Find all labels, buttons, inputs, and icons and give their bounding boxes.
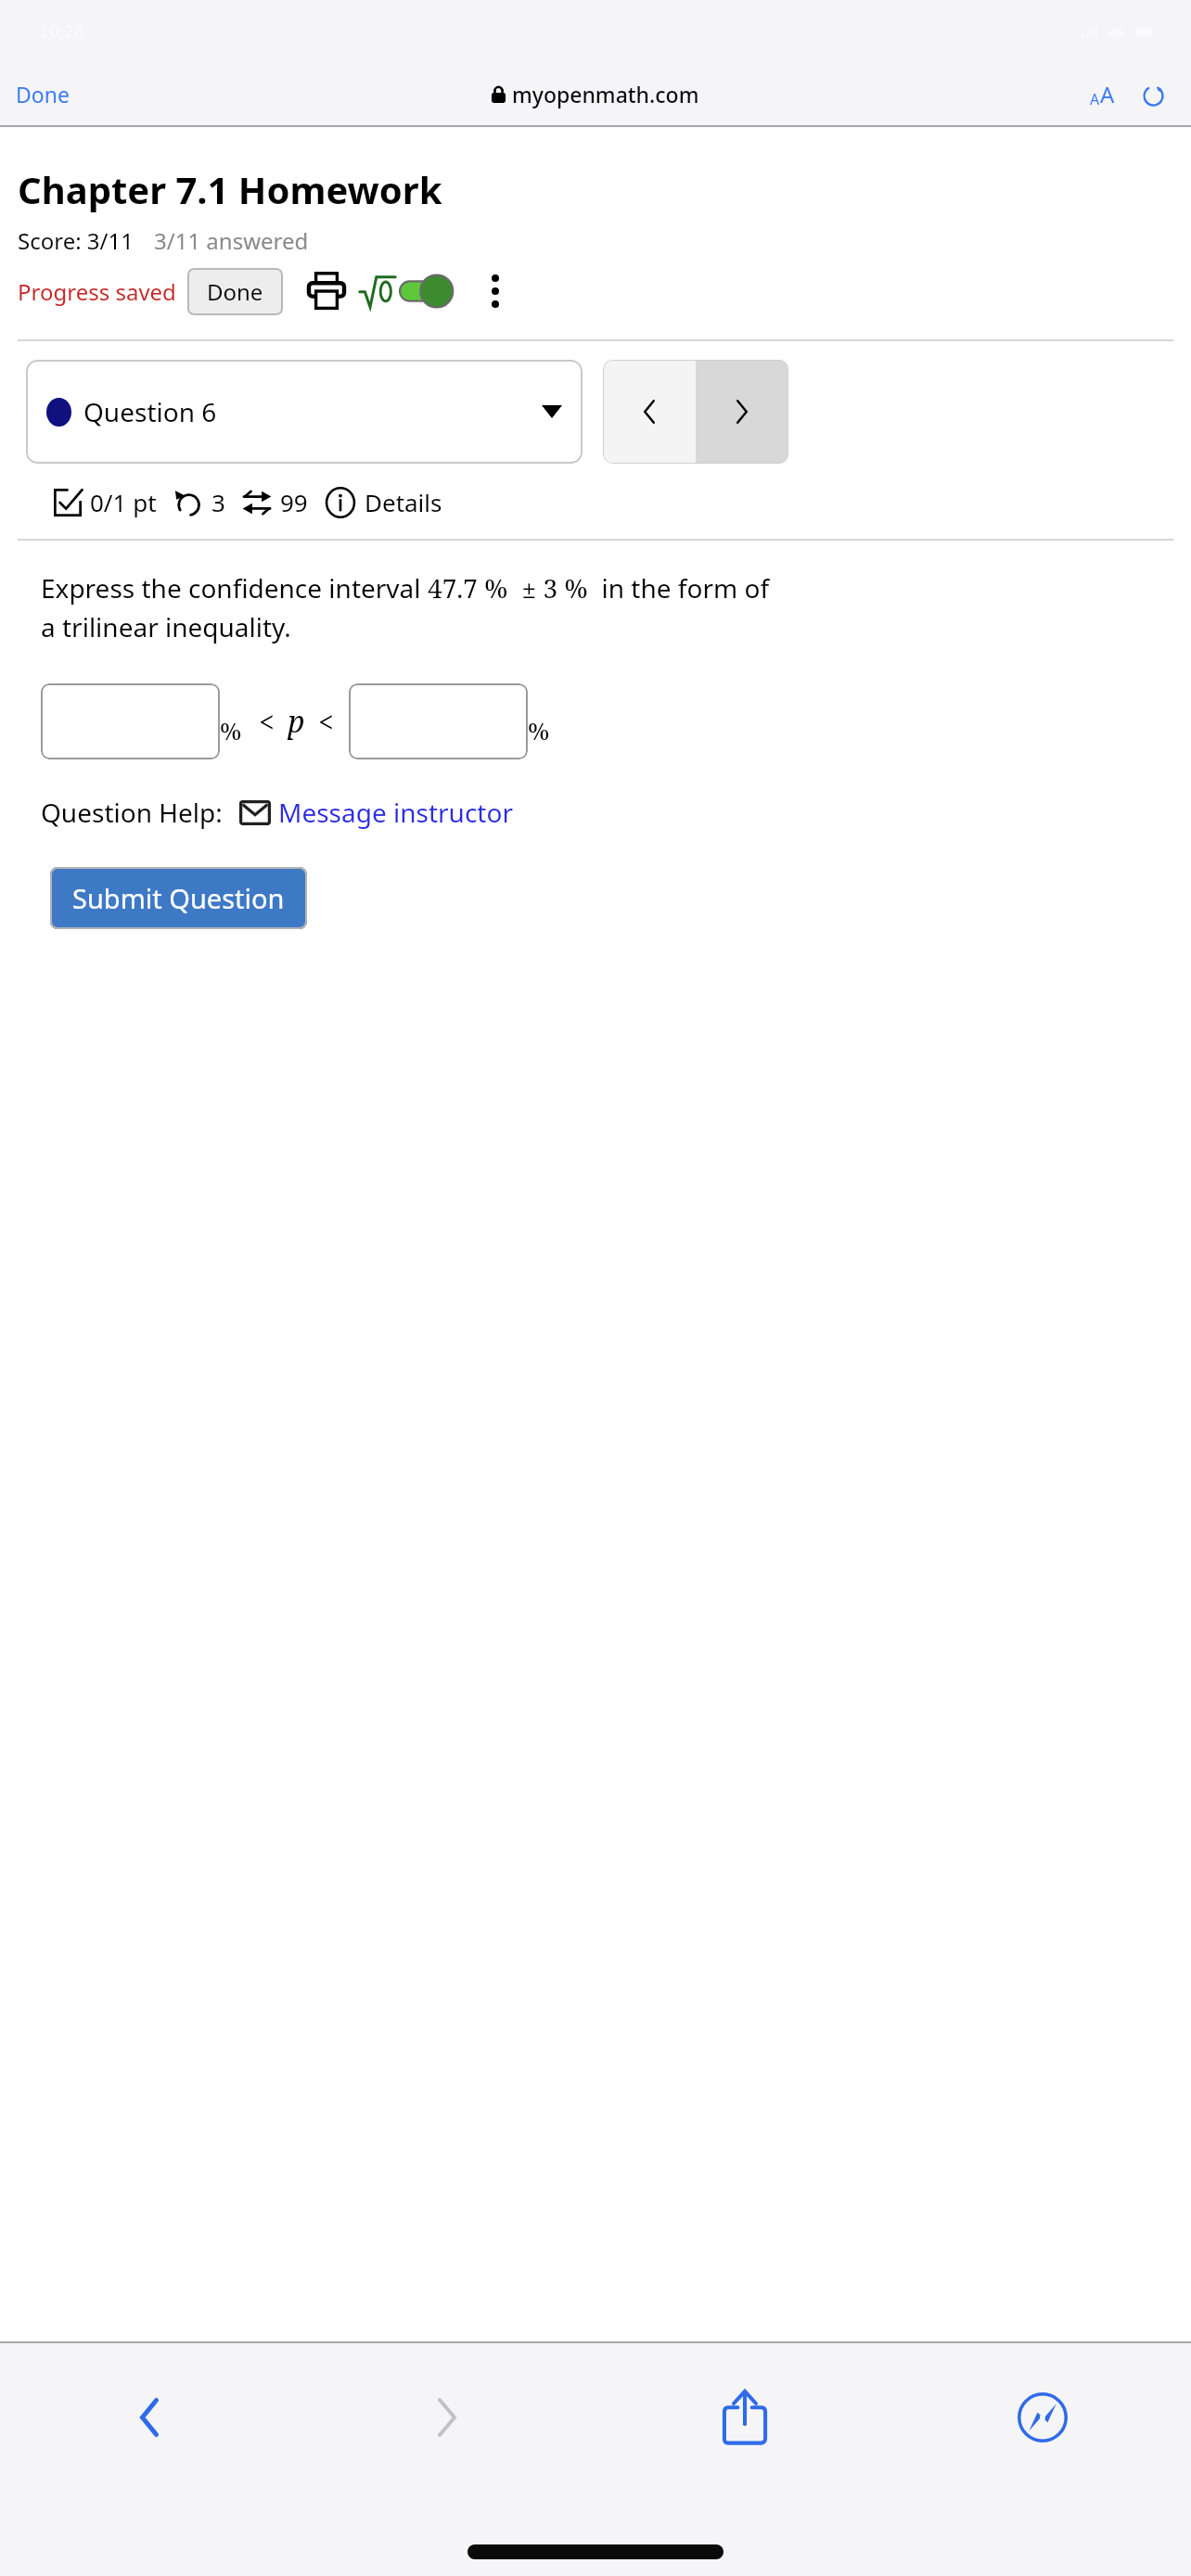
button[interactable]: Forward: [298, 2343, 595, 2492]
staticText: Progress saved: [18, 276, 176, 307]
staticText: %: [220, 714, 242, 746]
staticText: 3/11 answered: [154, 225, 309, 256]
staticText: A: [1100, 79, 1115, 109]
staticText: Question Help:: [41, 795, 223, 830]
button[interactable]: Message instructor: [239, 795, 513, 830]
button[interactable]: Share: [595, 2343, 893, 2492]
button[interactable]: Previous question: [603, 360, 696, 464]
button[interactable]: Next question: [696, 360, 788, 464]
button[interactable]: Back: [0, 2343, 298, 2492]
staticText: Done: [16, 80, 70, 108]
button[interactable]: Text size: [1082, 71, 1122, 117]
staticText: in the form of: [588, 570, 770, 606]
staticText: A: [1090, 89, 1100, 109]
staticText: ± 3 %: [508, 570, 588, 606]
staticText: Chapter 7.1 Homework: [18, 164, 442, 214]
staticText: p: [288, 701, 305, 742]
staticText: Submit Question: [72, 880, 285, 916]
staticText: 99: [280, 486, 308, 518]
button[interactable]: Reload: [1135, 77, 1171, 112]
button[interactable]: Question 6: [26, 360, 583, 464]
staticText: Done: [207, 276, 263, 307]
button[interactable]: Print: [305, 270, 348, 312]
staticText: a trilinear inequality.: [41, 609, 291, 644]
button[interactable]: Answer input: [349, 683, 528, 759]
button[interactable]: Details: [325, 486, 442, 518]
button[interactable]: More options: [474, 270, 517, 312]
staticText: Score: 3/11: [18, 225, 134, 256]
button[interactable]: Done: [0, 70, 85, 118]
button[interactable]: Done: [187, 268, 283, 315]
staticText: %: [528, 714, 550, 746]
staticText: 47.7 %: [428, 570, 508, 606]
button[interactable]: Math view toggle: [359, 273, 454, 310]
staticText: Details: [365, 486, 442, 518]
staticText: Express the confidence interval: [41, 570, 428, 606]
staticText: Question 6: [83, 394, 217, 429]
button[interactable]: Answer input: [41, 683, 220, 759]
staticText: 0/1 pt: [90, 486, 157, 518]
button[interactable]: myopenmath.com: [492, 80, 699, 108]
staticText: Message instructor: [278, 795, 513, 830]
button[interactable]: Submit Question: [50, 867, 307, 929]
staticText: <: [318, 703, 334, 741]
button[interactable]: Tabs: [893, 2343, 1191, 2492]
staticText: 3: [211, 486, 225, 518]
staticText: myopenmath.com: [512, 80, 699, 108]
staticText: <: [259, 703, 275, 741]
